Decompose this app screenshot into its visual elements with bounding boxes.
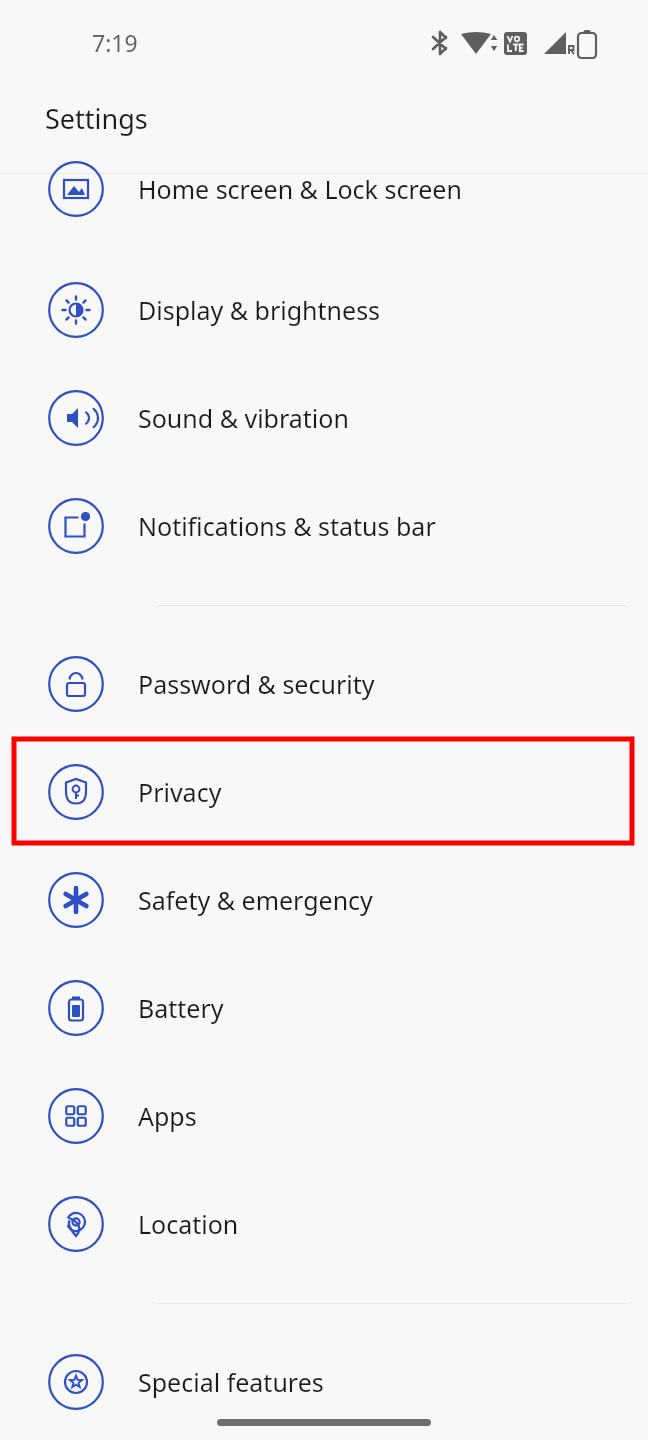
button[interactable]: Display & brightness: [0, 256, 648, 364]
staticText: Location: [138, 1207, 239, 1241]
staticText: Apps: [138, 1099, 197, 1133]
button[interactable]: Notifications & status bar: [0, 472, 648, 580]
staticText: Display & brightness: [138, 293, 381, 327]
button[interactable]: Location: [0, 1170, 648, 1278]
button[interactable]: Safety & emergency: [0, 846, 648, 954]
button[interactable]: Password & security: [0, 630, 648, 738]
button[interactable]: Sound & vibration: [0, 364, 648, 472]
button[interactable]: Battery: [0, 954, 648, 1062]
button[interactable]: Apps: [0, 1062, 648, 1170]
staticText: Safety & emergency: [138, 883, 373, 917]
staticText: Battery: [138, 991, 224, 1025]
staticText: Password & security: [138, 667, 375, 701]
staticText: Sound & vibration: [138, 401, 349, 435]
button[interactable]: Home screen & Lock screen: [0, 174, 648, 256]
staticText: Settings: [45, 100, 148, 137]
staticText: Privacy: [138, 775, 222, 809]
staticText: Home screen & Lock screen: [138, 172, 462, 206]
button[interactable]: Privacy: [0, 738, 648, 846]
staticText: 7:19: [92, 27, 138, 58]
staticText: Notifications & status bar: [138, 509, 436, 543]
button[interactable]: Special features: [0, 1328, 648, 1436]
staticText: Special features: [138, 1365, 324, 1399]
